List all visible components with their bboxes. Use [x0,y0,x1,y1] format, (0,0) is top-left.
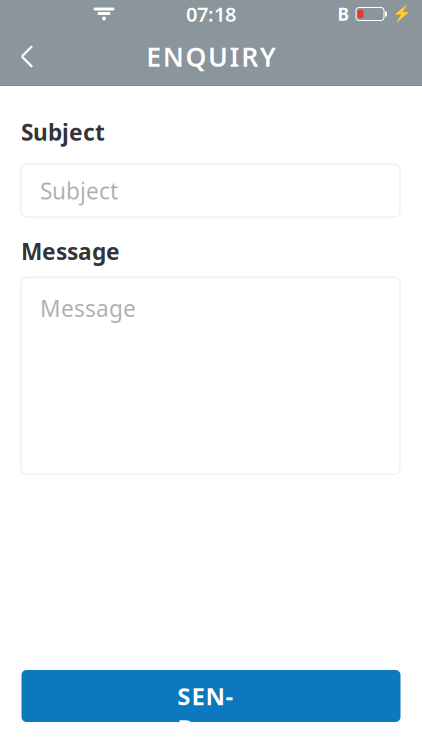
button[interactable]: Subject [21,164,400,217]
staticText: Subject [21,117,105,147]
staticText: 07:18 [186,1,236,27]
staticText: Message [21,236,120,266]
staticText: B [337,2,349,25]
button[interactable]: Back [0,27,54,85]
staticText: ENQUIRY [146,39,276,74]
staticText: Message [40,293,136,323]
staticText: SEND [177,680,245,712]
staticText: Subject [40,176,118,206]
staticText: ⚡ [392,5,412,23]
button[interactable]: SEND [21,670,400,722]
button[interactable]: Message [21,277,400,474]
